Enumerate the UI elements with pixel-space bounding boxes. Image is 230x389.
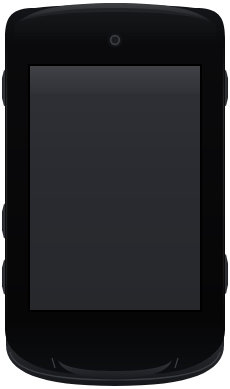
button[interactable]: Bike computer device [0,0,230,389]
